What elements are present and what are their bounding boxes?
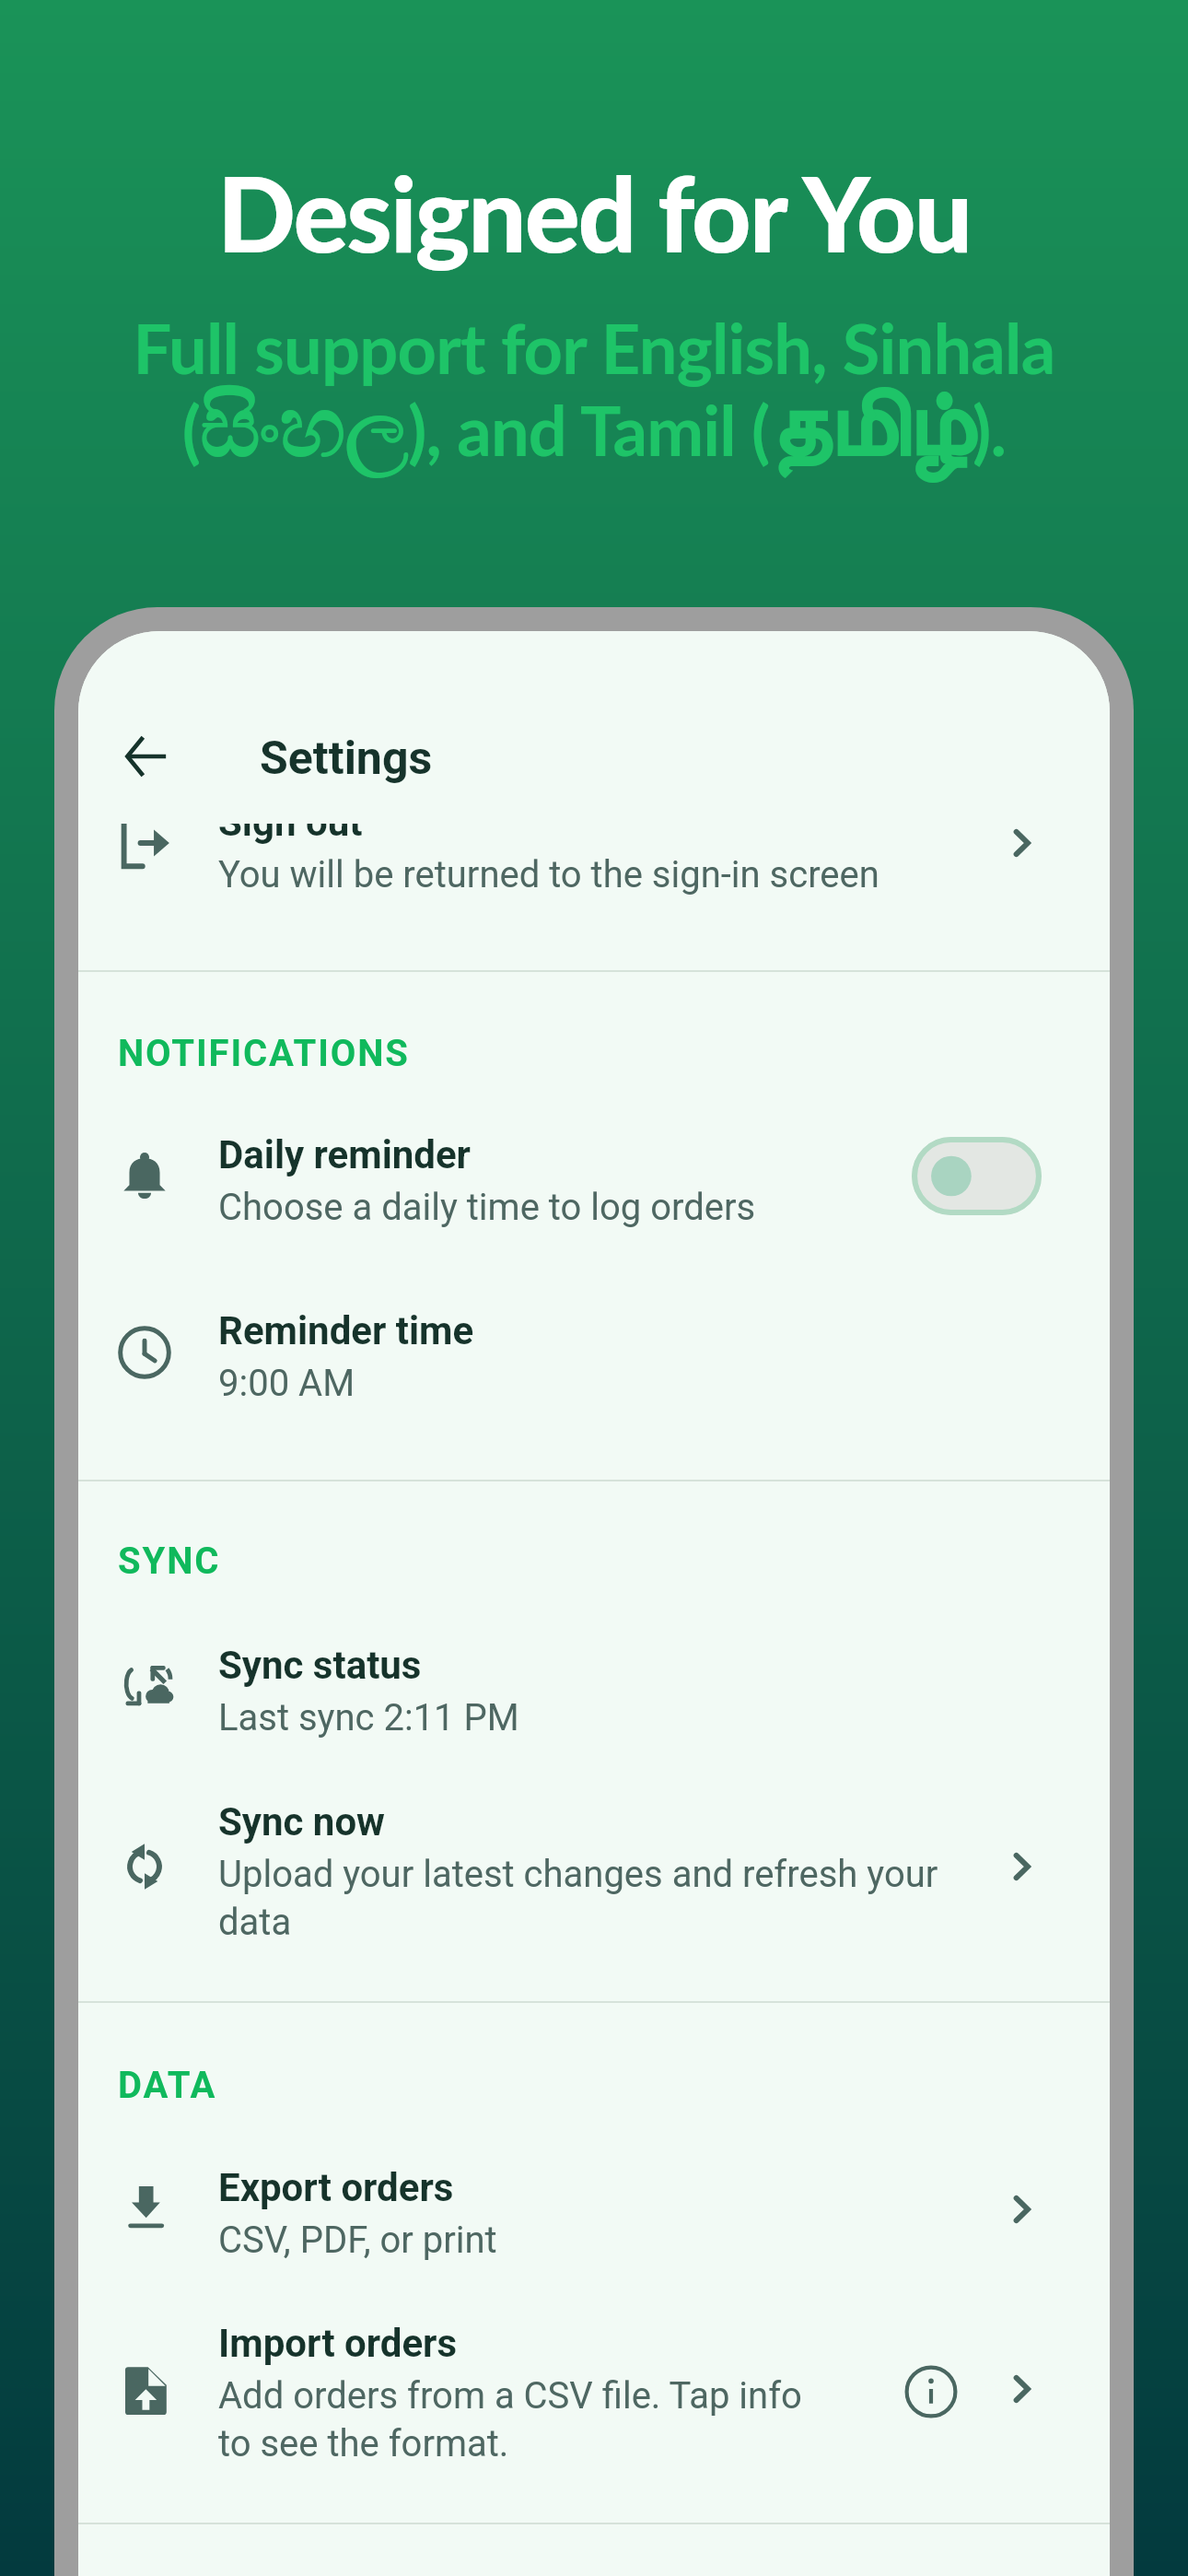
button[interactable]: Import format info <box>895 2356 967 2428</box>
button[interactable] <box>78 1615 1110 1762</box>
button[interactable] <box>78 1281 1110 1428</box>
staticText: Choose a daily time to log orders <box>218 1186 973 1229</box>
staticText: Upload your latest changes and refresh y… <box>218 1853 955 1944</box>
staticText: NOTIFICATIONS <box>118 1032 410 1075</box>
button[interactable] <box>78 1772 1110 1919</box>
staticText: Add orders from a CSV file. Tap info to … <box>218 2374 821 2465</box>
staticText: CSV, PDF, or print <box>218 2219 973 2262</box>
staticText: Last sync 2:11 PM <box>218 1696 973 1739</box>
button[interactable] <box>78 772 1110 919</box>
staticText: Sync status <box>218 1643 422 1688</box>
button[interactable] <box>78 1105 1110 1252</box>
staticText: DATA <box>118 2064 217 2107</box>
staticText: SYNC <box>118 1540 221 1583</box>
button[interactable]: Back <box>103 713 190 800</box>
staticText: Daily reminder <box>218 1132 472 1177</box>
button[interactable] <box>78 2293 1110 2441</box>
staticText: 9:00 AM <box>218 1362 973 1405</box>
button[interactable] <box>78 2137 1110 2285</box>
staticText: You will be returned to the sign-in scre… <box>218 853 973 896</box>
staticText: Reminder time <box>218 1308 474 1353</box>
staticText: Import orders <box>218 2321 458 2366</box>
button[interactable]: Daily reminder switch <box>903 1131 1050 1220</box>
staticText: Designed for You <box>0 150 1188 274</box>
staticText: Export orders <box>218 2165 454 2210</box>
staticText: Full support for English, Sinhala (සිංහල… <box>0 307 1188 474</box>
staticText: Settings <box>260 732 433 786</box>
staticText: Sign out <box>218 800 363 845</box>
staticText: Sync now <box>218 1799 385 1844</box>
